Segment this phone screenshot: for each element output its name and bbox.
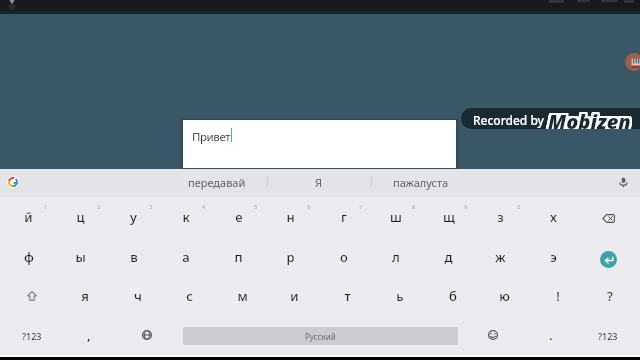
button[interactable]: . <box>537 325 565 345</box>
staticText: . <box>549 326 553 344</box>
button[interactable]: в <box>107 238 160 276</box>
button[interactable]: т <box>321 277 374 315</box>
staticText: г <box>341 208 347 226</box>
staticText: и <box>290 287 299 305</box>
button[interactable]: ч <box>111 277 164 315</box>
staticText: Mobizen <box>549 109 632 129</box>
button[interactable]: ж <box>474 238 527 276</box>
staticText: Mobizen <box>546 108 629 129</box>
staticText: л <box>392 248 400 266</box>
staticText: Mobizen <box>546 108 629 128</box>
staticText: Mobizen <box>547 108 630 127</box>
button[interactable]: ц <box>54 198 107 236</box>
staticText: Mobizen <box>549 108 632 127</box>
button[interactable]: й <box>2 198 55 236</box>
button[interactable]: Enter <box>600 251 617 268</box>
staticText: й <box>24 208 33 226</box>
staticText: ф <box>24 248 34 266</box>
staticText: Mobizen <box>547 108 630 128</box>
staticText: а <box>182 248 190 266</box>
button[interactable]: ?123 <box>10 326 54 346</box>
button[interactable]: ? <box>583 277 636 315</box>
button[interactable]: с <box>163 277 216 315</box>
button[interactable]: ы <box>54 238 107 276</box>
staticText: 6 <box>307 203 311 211</box>
staticText: ц <box>76 208 85 226</box>
staticText: Русский <box>305 331 336 342</box>
button[interactable]: Mobizen recorder <box>625 53 640 71</box>
button[interactable]: ?123 <box>587 326 629 346</box>
button[interactable]: е <box>212 198 265 236</box>
staticText: щ <box>443 208 455 226</box>
staticText: р <box>286 248 295 266</box>
button[interactable]: п <box>212 238 265 276</box>
staticText: ?123 <box>22 330 42 342</box>
staticText: с <box>186 287 193 305</box>
staticText: , <box>87 326 91 344</box>
staticText: э <box>550 248 557 266</box>
button[interactable]: ! <box>531 277 584 315</box>
staticText: ? <box>607 287 613 305</box>
button[interactable]: , <box>75 325 103 345</box>
staticText: з <box>497 208 504 226</box>
button[interactable]: ш <box>369 198 422 236</box>
button[interactable]: у <box>107 198 160 236</box>
button[interactable]: л <box>369 238 422 276</box>
staticText: Mobizen <box>546 110 629 129</box>
button[interactable]: х <box>527 198 580 236</box>
staticText: Recorded by <box>473 112 544 128</box>
staticText: Mobizen <box>548 108 631 127</box>
button[interactable]: щ <box>422 198 475 236</box>
staticText: Mobizen <box>549 108 632 128</box>
button[interactable]: д <box>422 238 475 276</box>
button[interactable]: пажалуста <box>369 168 472 196</box>
staticText: б <box>449 287 457 305</box>
button[interactable]: Google search <box>5 174 21 190</box>
button[interactable]: г <box>317 198 370 236</box>
staticText: ?123 <box>598 330 618 342</box>
staticText: Mobizen <box>550 108 633 127</box>
button[interactable]: я <box>58 277 111 315</box>
button[interactable]: ь <box>373 277 426 315</box>
button[interactable]: и <box>268 277 321 315</box>
button[interactable]: м <box>216 277 269 315</box>
staticText: Mobizen <box>546 108 629 127</box>
staticText: Я <box>315 175 323 190</box>
button[interactable]: к <box>159 198 212 236</box>
staticText: ь <box>396 287 404 305</box>
button[interactable]: а <box>159 238 212 276</box>
button[interactable]: Change language <box>137 325 157 345</box>
staticText: 4 <box>202 203 206 211</box>
staticText: т <box>344 287 351 305</box>
button[interactable]: ф <box>2 238 55 276</box>
button[interactable]: Русский <box>183 327 458 345</box>
staticText: ы <box>75 248 86 266</box>
button[interactable]: б <box>426 277 479 315</box>
staticText: ! <box>556 287 560 305</box>
button[interactable]: о <box>317 238 370 276</box>
staticText: Mobizen <box>548 110 631 129</box>
staticText: м <box>237 287 248 305</box>
button[interactable]: з <box>474 198 527 236</box>
button[interactable]: ю <box>478 277 531 315</box>
button[interactable]: э <box>527 238 580 276</box>
staticText: 5 <box>254 203 258 211</box>
button[interactable]: Я <box>269 168 368 196</box>
button[interactable]: Emoji <box>483 325 503 345</box>
button[interactable]: Recorded by <box>461 108 640 129</box>
button[interactable]: Shift <box>22 286 42 306</box>
staticText: 2 <box>97 203 101 211</box>
button[interactable]: Voice input <box>615 174 632 191</box>
staticText: е <box>235 208 243 226</box>
staticText: п <box>234 248 243 266</box>
staticText: Mobizen <box>547 110 630 129</box>
staticText: 9 <box>464 203 468 211</box>
button[interactable]: н <box>264 198 317 236</box>
button[interactable]: передавай <box>165 168 268 196</box>
staticText: Mobizen <box>548 109 631 129</box>
button[interactable]: р <box>264 238 317 276</box>
staticText: 0 <box>517 203 521 211</box>
staticText: пажалуста <box>393 175 449 190</box>
button[interactable]: Привет <box>183 120 456 168</box>
button[interactable]: Backspace <box>597 209 619 228</box>
